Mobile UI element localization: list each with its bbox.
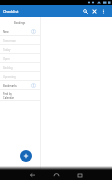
- button[interactable]: Upcoming: [0, 72, 40, 81]
- button[interactable]: Close: [90, 5, 99, 17]
- staticText: Checklist: [3, 9, 19, 14]
- staticText: Bookings: [14, 21, 26, 25]
- staticText: New: [3, 30, 9, 34]
- staticText: Bookmarks: [3, 84, 17, 88]
- button[interactable]: New: [0, 27, 40, 36]
- staticText: Backlog: [3, 66, 13, 70]
- button[interactable]: Back: [22, 170, 42, 180]
- staticText: Open: [3, 57, 10, 61]
- staticText: 1: [33, 30, 35, 34]
- button[interactable]: Add task: [20, 150, 32, 162]
- button[interactable]: More options: [99, 5, 108, 17]
- staticText: Find by Calendar: [3, 92, 14, 100]
- button[interactable]: Home: [46, 170, 66, 180]
- button[interactable]: Open: [0, 54, 40, 63]
- button[interactable]: Tomorrow: [0, 36, 40, 45]
- staticText: 1: [33, 84, 35, 88]
- staticText: Tomorrow: [3, 39, 16, 43]
- button[interactable]: Bookmarks: [0, 81, 40, 90]
- staticText: Upcoming: [3, 75, 16, 79]
- button[interactable]: Backlog: [0, 63, 40, 72]
- button[interactable]: Find by Calendar: [0, 90, 40, 101]
- button[interactable]: Today: [0, 45, 40, 54]
- button[interactable]: Recent apps: [70, 170, 90, 180]
- staticText: Today: [3, 48, 11, 52]
- button[interactable]: Search: [81, 5, 90, 17]
